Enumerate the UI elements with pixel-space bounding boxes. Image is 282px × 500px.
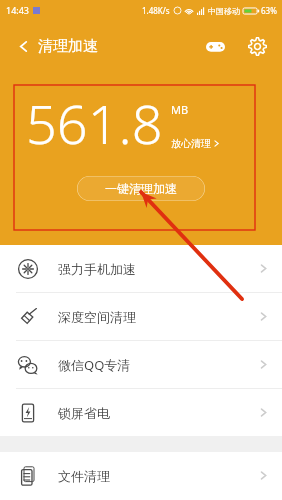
staticText: 63% [261,5,277,16]
button[interactable]: 文件清理 [0,452,282,499]
staticText: 微信QQ专清 [58,356,259,374]
button[interactable]: Settings [242,31,272,61]
button[interactable]: 微信QQ专清 [0,341,282,388]
staticText: 一键清理加速 [105,181,177,196]
staticText: 锁屏省电 [58,405,259,421]
button[interactable]: 一键清理加速 [77,176,205,201]
button[interactable]: 放心清理 [171,137,220,150]
staticText: 深度空间清理 [58,309,259,325]
staticText: MB [171,102,189,117]
button[interactable]: Game booster [200,31,230,61]
button[interactable]: 强力手机加速 [0,245,282,292]
staticText: 文件清理 [58,468,259,484]
staticText: 放心清理 [171,137,211,150]
staticText: 1.48K/s [142,5,170,16]
button[interactable]: 锁屏省电 [0,389,282,436]
button[interactable]: Back [8,31,38,61]
staticText: 中国移动 [208,6,240,16]
staticText: 561.8 [26,86,163,160]
staticText: 14:43 [6,4,30,16]
staticText: 清理加速 [38,37,98,56]
staticText: 强力手机加速 [58,261,259,277]
button[interactable]: 深度空间清理 [0,293,282,340]
